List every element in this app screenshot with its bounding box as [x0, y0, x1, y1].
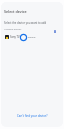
button[interactable]: Sony TV: [1, 33, 63, 41]
staticText: Pairing: [28, 36, 36, 39]
staticText: Sony TV: [10, 35, 20, 39]
staticText: Select the device you want to add: [4, 21, 47, 25]
staticText: Can't find your device?: [17, 114, 48, 118]
staticText: Available devices: [4, 28, 22, 31]
button[interactable]: Can't find your device?: [1, 105, 63, 127]
staticText: Select device: [4, 9, 27, 14]
other: Connecting: [20, 34, 27, 41]
